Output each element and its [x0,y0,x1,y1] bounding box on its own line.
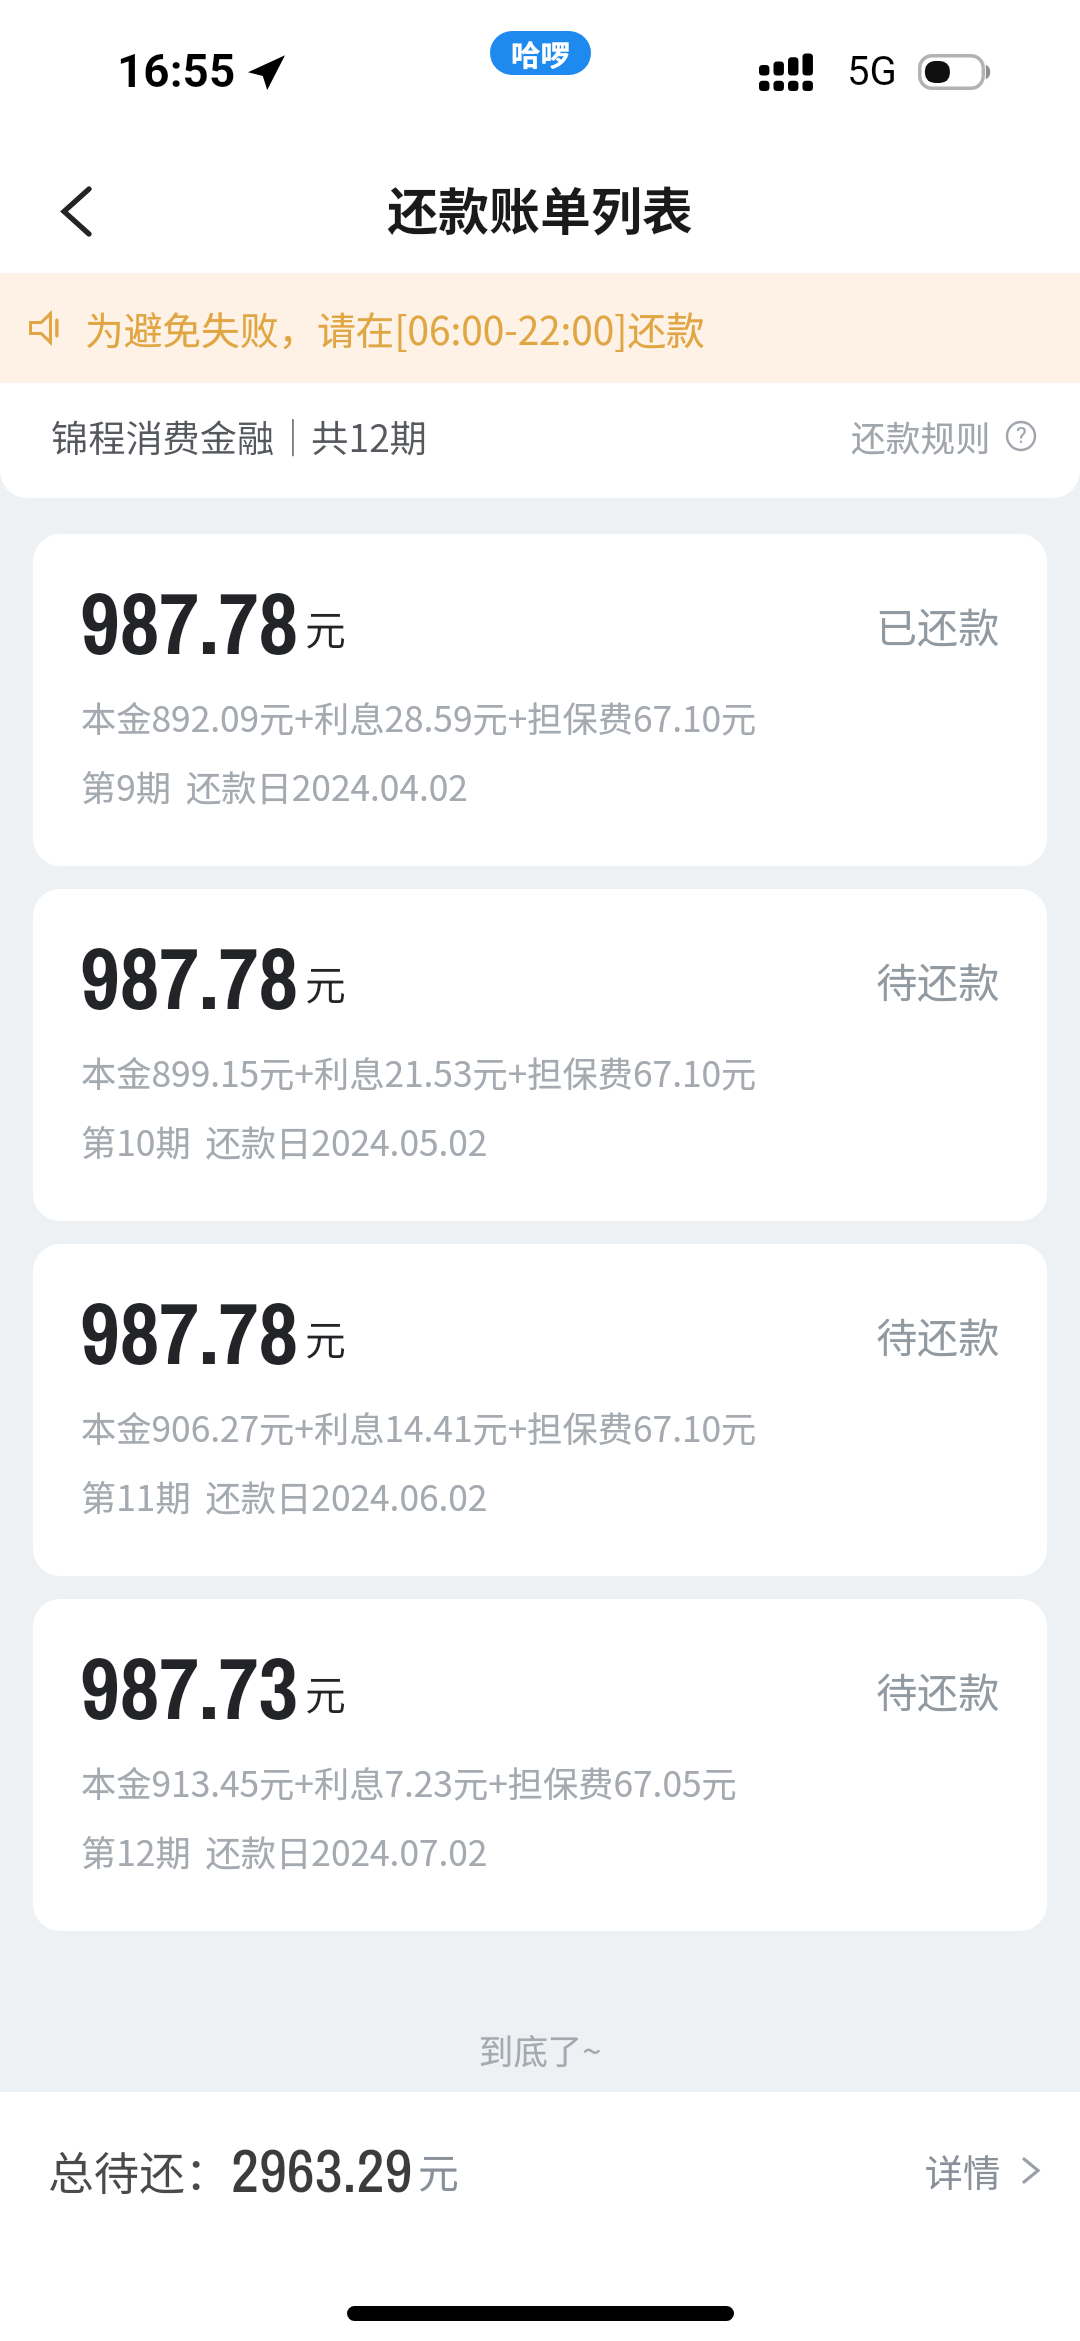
staticText: 元 [305,1663,346,1722]
staticText: 元 [305,1308,346,1367]
staticText: 到底了~ [0,2024,1080,2074]
staticText: 987.78 [80,919,299,1036]
staticText: 哈啰 [511,32,570,75]
staticText: 锦程消费金融｜共12期 [51,409,427,463]
staticText: 2963.29 [231,2129,413,2211]
staticText: 元 [418,2141,459,2200]
staticText: 元 [305,953,346,1012]
staticText: 还款规则 [851,411,991,461]
button[interactable]: 详情 [925,2131,1038,2210]
staticText: 已还款 [876,595,1000,655]
staticText: 元 [305,598,346,657]
staticText: 本金913.45元+利息7.23元+担保费67.05元 [81,1756,737,1807]
button[interactable]: 987.73 [33,1599,1047,1931]
staticText: 为避免失败，请在[06:00-22:00]还款 [85,300,705,356]
staticText: 987.78 [80,1274,299,1391]
staticText: 第10期 还款日2024.05.02 [81,1115,488,1166]
staticText: 总待还： [48,2137,231,2203]
staticText: ? [1016,422,1027,448]
staticText: 987.78 [80,564,299,681]
staticText: 987.73 [80,1629,299,1746]
button[interactable]: 还款规则 [851,399,1036,473]
staticText: 待还款 [876,1305,1000,1365]
staticText: 第12期 还款日2024.07.02 [81,1825,488,1876]
staticText: 本金906.27元+利息14.41元+担保费67.10元 [81,1401,757,1452]
button[interactable]: Back [0,150,162,273]
staticText: 详情 [925,2143,1001,2198]
staticText: 本金892.09元+利息28.59元+担保费67.10元 [81,691,757,742]
staticText: 第11期 还款日2024.06.02 [81,1470,488,1521]
button[interactable]: 987.78 [33,534,1047,866]
staticText: 待还款 [876,950,1000,1010]
button[interactable]: 987.78 [33,889,1047,1221]
staticText: 待还款 [876,1660,1000,1720]
staticText: 5G [847,48,897,95]
staticText: 本金899.15元+利息21.53元+担保费67.10元 [81,1046,757,1097]
staticText: 16:55 [117,44,236,98]
staticText: 还款账单列表 [387,171,694,245]
staticText: 第9期 还款日2024.04.02 [81,760,468,811]
button[interactable]: 987.78 [33,1244,1047,1576]
